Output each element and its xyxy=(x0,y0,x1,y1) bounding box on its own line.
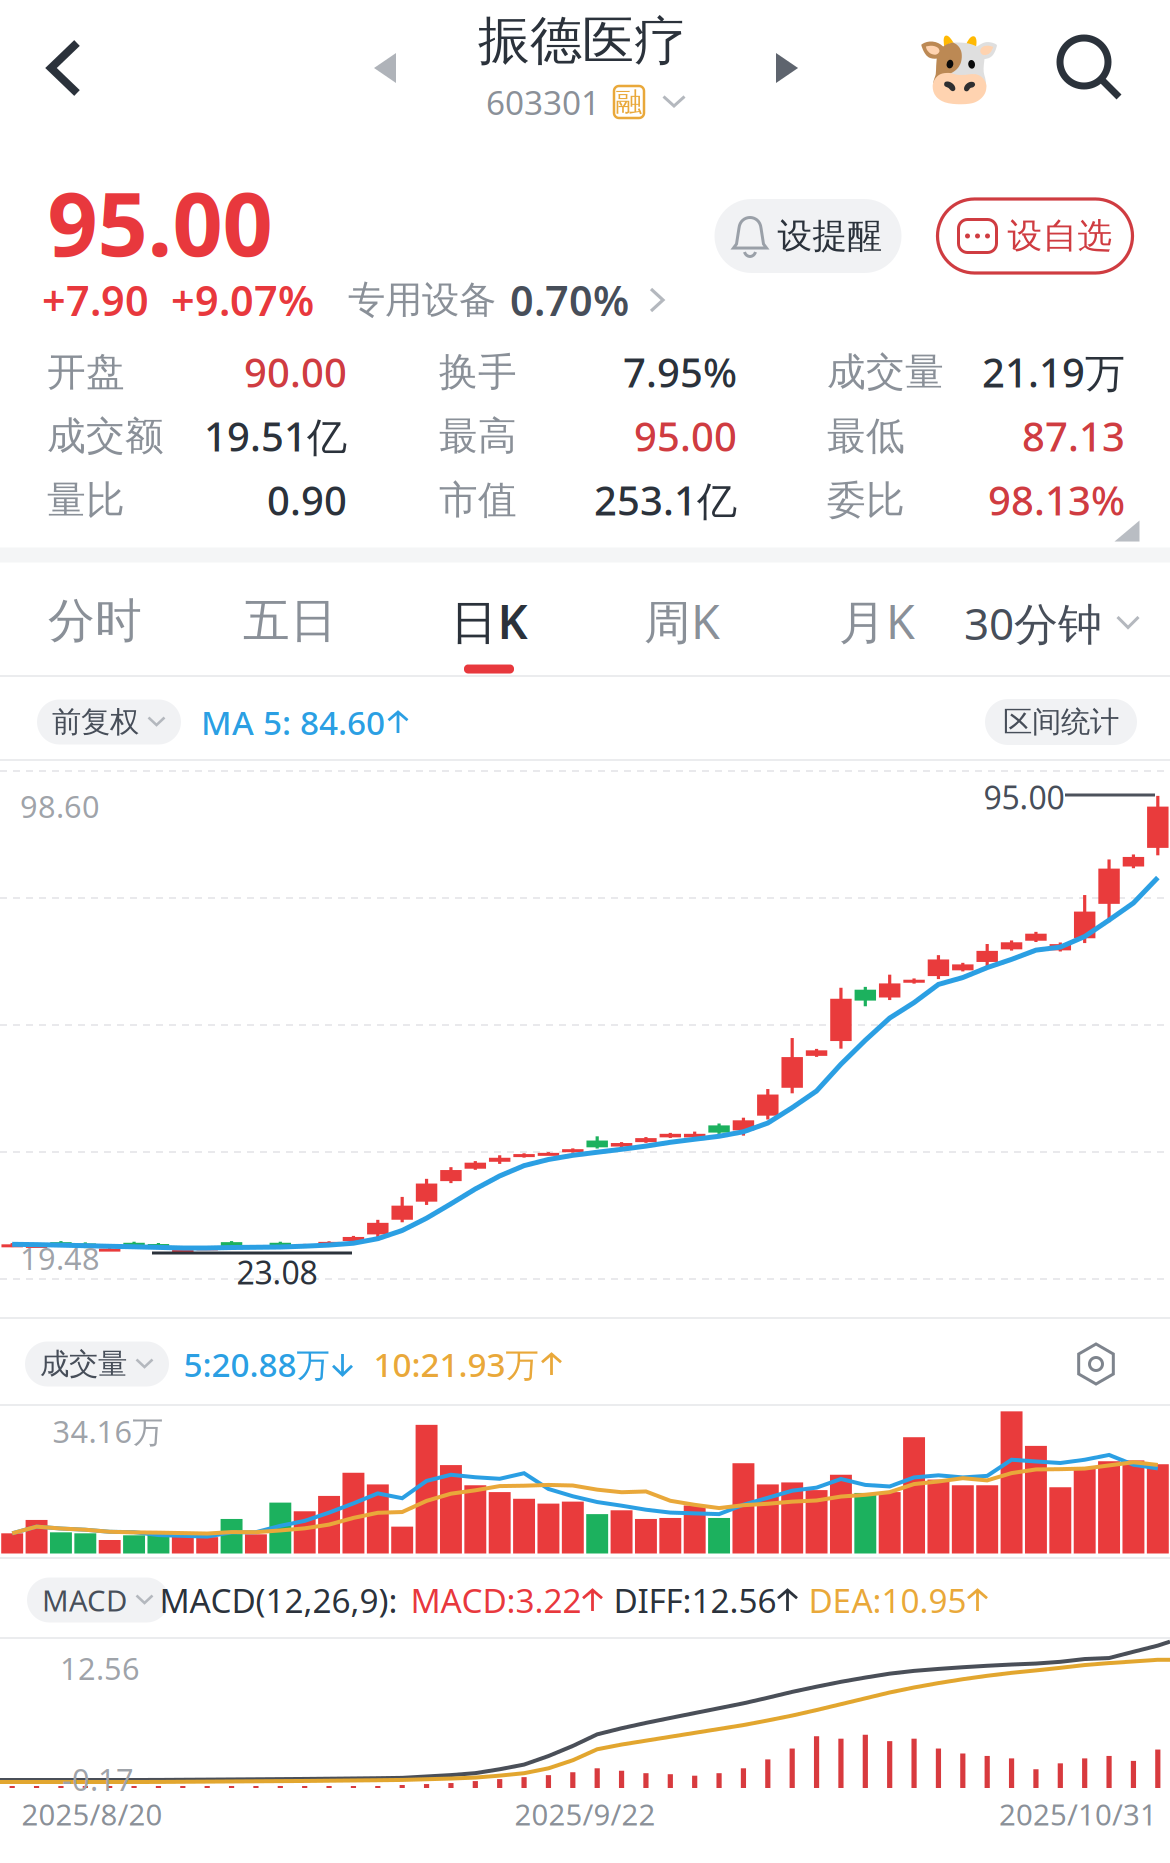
button[interactable]: Back xyxy=(8,8,120,128)
staticText: 10:21.93万 xyxy=(373,1342,538,1386)
staticText: DIFF:12.56 xyxy=(613,1578,776,1622)
button[interactable]: Mascot xyxy=(909,18,1009,118)
button[interactable]: Next stock xyxy=(749,30,825,106)
staticText: 融 xyxy=(615,86,642,118)
button[interactable]: 日K xyxy=(414,565,564,681)
button[interactable]: 分时 xyxy=(20,565,170,681)
staticText: 19.48 xyxy=(20,1238,100,1278)
staticText: 21.19万 xyxy=(982,345,1125,398)
staticText: 周K xyxy=(644,590,720,652)
staticText: 0.90 xyxy=(267,473,347,526)
staticText: -0.17 xyxy=(62,1759,134,1799)
button[interactable]: 设自选 xyxy=(937,199,1132,273)
staticText: MACD(12,26,9): xyxy=(159,1578,397,1622)
staticText: 90.00 xyxy=(244,345,347,398)
staticText: 成交量 xyxy=(827,348,944,396)
staticText: 2025/8/20 xyxy=(21,1794,162,1833)
staticText: 5:20.88万 xyxy=(183,1342,329,1386)
staticText: MACD:3.22 xyxy=(410,1578,581,1622)
button[interactable]: Chart settings xyxy=(1065,1333,1127,1395)
staticText: 最高 xyxy=(439,412,517,460)
button[interactable]: 五日 xyxy=(215,565,365,681)
staticText: 30分钟 xyxy=(964,594,1102,652)
staticText: 专用设备 xyxy=(348,277,496,323)
staticText: 34.16万 xyxy=(52,1411,163,1451)
staticText: 98.13% xyxy=(988,473,1125,526)
staticText: +9.07% xyxy=(171,273,314,327)
staticText: 253.1亿 xyxy=(594,473,737,526)
button[interactable]: 周K xyxy=(607,565,757,681)
button[interactable]: 前复权 xyxy=(37,699,181,744)
staticText: 量比 xyxy=(47,476,125,524)
staticText: 分时 xyxy=(48,592,142,650)
staticText: 0.70% xyxy=(510,273,629,327)
staticText: 95.00 xyxy=(983,776,1064,818)
staticText: 委比 xyxy=(827,476,905,524)
staticText: 五日 xyxy=(243,592,337,650)
staticText: 区间统计 xyxy=(1003,704,1119,740)
staticText: 前复权 xyxy=(52,704,139,740)
button[interactable]: 设提醒 xyxy=(714,199,901,273)
staticText: 设自选 xyxy=(1007,215,1112,257)
staticText: 23.08 xyxy=(236,1251,317,1293)
staticText: 🐮 xyxy=(916,28,1002,108)
staticText: MACD xyxy=(42,1580,127,1619)
button[interactable]: Previous stock xyxy=(347,30,423,106)
staticText: 12.56 xyxy=(60,1648,140,1688)
staticText: 振德医疗 xyxy=(478,9,686,73)
staticText: 2025/10/31 xyxy=(999,1794,1157,1833)
staticText: 95.00 xyxy=(634,409,737,462)
staticText: 7.95% xyxy=(623,345,737,398)
staticText: 月K xyxy=(839,590,915,652)
staticText: 日K xyxy=(450,590,527,652)
staticText: 开盘 xyxy=(47,348,125,396)
staticText: 19.51亿 xyxy=(204,409,347,462)
staticText: 87.13 xyxy=(1022,409,1125,462)
staticText: 换手 xyxy=(439,348,517,396)
button[interactable]: 区间统计 xyxy=(985,699,1137,745)
button[interactable]: MACD xyxy=(27,1577,169,1622)
staticText: 设提醒 xyxy=(777,215,882,257)
staticText: 2025/9/22 xyxy=(514,1794,655,1833)
staticText: 市值 xyxy=(439,476,517,524)
staticText: 成交量 xyxy=(40,1346,127,1382)
button[interactable]: Search xyxy=(1037,15,1143,121)
staticText: MA 5: 84.60 xyxy=(201,700,385,744)
button[interactable]: 成交量 xyxy=(25,1341,169,1386)
button[interactable]: 月K xyxy=(802,565,952,681)
staticText: 603301 xyxy=(486,80,600,124)
staticText: 最低 xyxy=(827,412,905,460)
staticText: 成交额 xyxy=(47,412,164,460)
button[interactable]: 30分钟 xyxy=(964,577,1140,669)
staticText: DEA:10.95 xyxy=(808,1578,966,1622)
staticText: 98.60 xyxy=(20,786,100,826)
staticText: +7.90 xyxy=(42,273,149,327)
staticText: 95.00 xyxy=(47,164,272,280)
